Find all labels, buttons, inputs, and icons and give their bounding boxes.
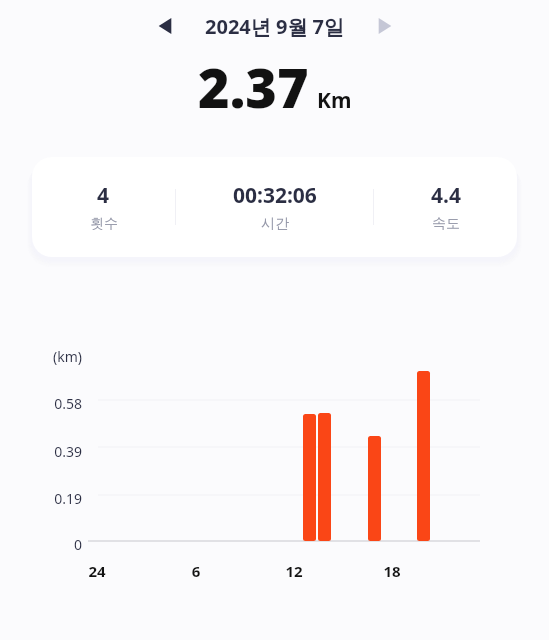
staticText: 횟수	[90, 215, 118, 233]
staticText: 2.37	[198, 50, 309, 122]
staticText: 00:32:06	[233, 181, 317, 210]
staticText: Km	[317, 86, 352, 115]
staticText: 0.39	[0, 442, 82, 461]
staticText: 12	[274, 561, 314, 581]
staticText: (km)	[0, 347, 82, 366]
button[interactable]: Previous day	[147, 8, 183, 44]
staticText: 0.58	[0, 394, 82, 413]
staticText: 2024년 9월 7일	[205, 13, 345, 40]
staticText: 0	[0, 535, 82, 554]
button[interactable]: Next day	[367, 8, 403, 44]
button[interactable]: 4.4	[374, 175, 517, 239]
staticText: 시간	[261, 215, 289, 233]
staticText: 6	[176, 561, 216, 581]
staticText: 0.19	[0, 489, 82, 508]
button[interactable]: 4	[32, 175, 175, 239]
staticText: 4.4	[431, 181, 461, 210]
staticText: 18	[372, 561, 412, 581]
staticText: 속도	[432, 215, 460, 233]
button[interactable]: 00:32:06	[176, 175, 373, 239]
staticText: 24	[77, 561, 117, 581]
staticText: 4	[97, 181, 110, 210]
